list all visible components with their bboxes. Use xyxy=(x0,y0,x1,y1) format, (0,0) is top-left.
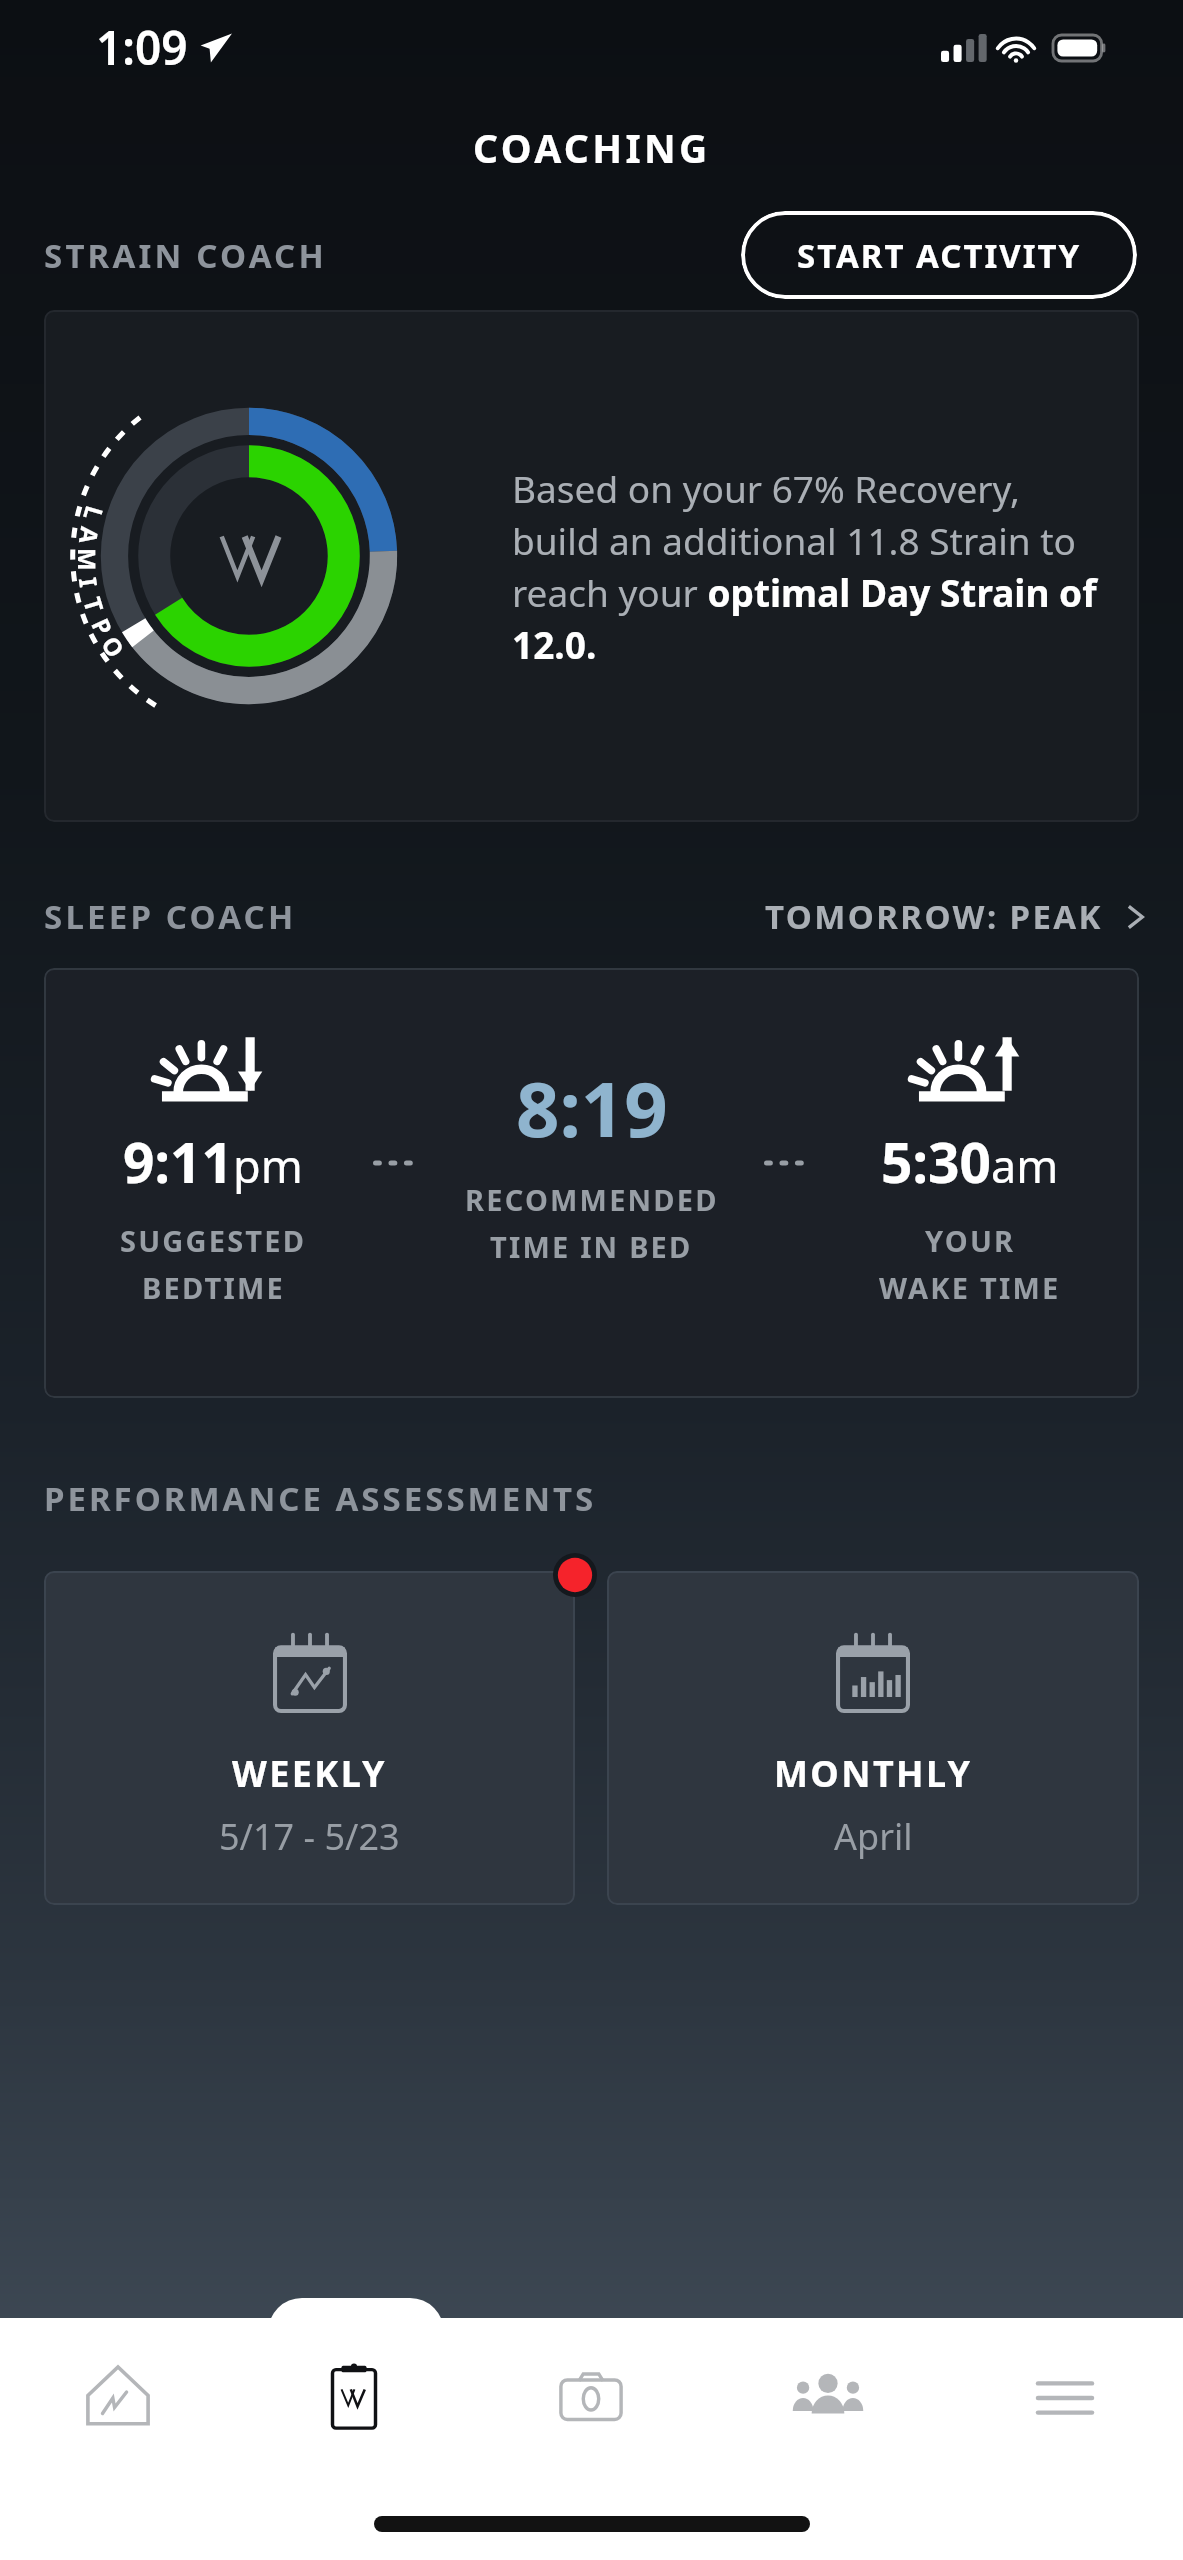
staticText: L xyxy=(76,502,112,525)
staticText: 8:19 xyxy=(516,1056,668,1160)
staticText: April xyxy=(834,1812,913,1861)
staticText: 5:30 xyxy=(881,1124,991,1199)
button[interactable]: MONTHLY xyxy=(607,1571,1139,1905)
button[interactable]: Coaching xyxy=(236,2318,472,2478)
staticText: WEEKLY xyxy=(232,1749,388,1798)
staticText: I xyxy=(72,575,106,590)
staticText: 1:09 xyxy=(96,16,188,79)
button[interactable]: Community xyxy=(709,2318,946,2478)
staticText: A xyxy=(72,525,107,546)
staticText: SUGGESTED xyxy=(120,1221,307,1260)
staticText: YOUR xyxy=(925,1221,1016,1260)
staticText: TOMORROW: PEAK xyxy=(765,894,1103,939)
button[interactable]: Camera xyxy=(472,2318,709,2478)
button[interactable]: Menu xyxy=(946,2318,1183,2478)
staticText: RECOMMENDED xyxy=(465,1180,719,1219)
staticText: BEDTIME xyxy=(142,1268,285,1307)
staticText: START ACTIVITY xyxy=(797,233,1082,278)
staticText: T xyxy=(76,593,112,616)
staticText: SLEEP COACH xyxy=(44,894,297,939)
staticText: 5/17 - 5/23 xyxy=(219,1812,400,1861)
staticText: WAKE TIME xyxy=(879,1268,1061,1307)
button[interactable]: Home xyxy=(0,2318,236,2478)
staticText: O xyxy=(94,629,132,663)
staticText: M xyxy=(71,548,104,571)
staticText: am xyxy=(991,1135,1059,1196)
button[interactable]: WEEKLY xyxy=(44,1571,575,1905)
staticText: 9:11 xyxy=(123,1124,233,1199)
staticText: STRAIN COACH xyxy=(44,233,327,278)
staticText: PERFORMANCE ASSESSMENTS xyxy=(44,1476,597,1521)
button[interactable]: START ACTIVITY xyxy=(741,211,1137,299)
staticText: TIME IN BED xyxy=(490,1227,693,1266)
button[interactable]: TOMORROW: PEAK xyxy=(765,894,1149,939)
button[interactable]: O xyxy=(44,310,1139,822)
staticText: COACHING xyxy=(473,121,711,174)
staticText: pm xyxy=(233,1135,303,1196)
button[interactable]: 9:11 xyxy=(44,968,1139,1398)
staticText: MONTHLY xyxy=(774,1749,973,1798)
staticText: P xyxy=(84,613,121,640)
staticText: Based on your 67% Recovery, build an add… xyxy=(512,463,1115,670)
